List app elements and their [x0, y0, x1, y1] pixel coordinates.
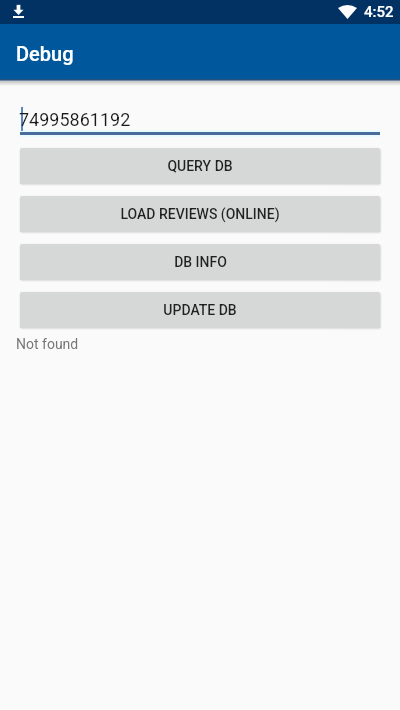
staticText: DB INFO — [174, 254, 227, 270]
staticText: LOAD REVIEWS (ONLINE) — [120, 206, 280, 222]
button[interactable]: 74995861192 — [20, 100, 380, 136]
button[interactable]: LOAD REVIEWS (ONLINE) — [20, 196, 380, 232]
staticText: 74995861192 — [19, 109, 131, 130]
staticText: QUERY DB — [167, 158, 233, 174]
staticText: Debug — [16, 42, 74, 65]
staticText: UPDATE DB — [163, 302, 237, 318]
staticText: Not found — [16, 336, 79, 352]
button[interactable]: UPDATE DB — [20, 292, 380, 328]
other: Wi-Fi — [338, 4, 357, 19]
other: Download — [13, 4, 24, 18]
button[interactable]: QUERY DB — [20, 148, 380, 184]
staticText: 4:52 — [364, 3, 394, 21]
button[interactable]: DB INFO — [20, 244, 380, 280]
